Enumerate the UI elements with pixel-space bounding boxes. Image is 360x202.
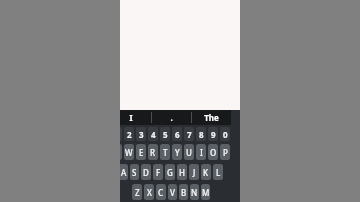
staticText: S <box>132 167 137 178</box>
staticText: P <box>223 147 228 158</box>
staticText: F <box>156 167 161 178</box>
button[interactable]: W <box>124 144 134 160</box>
staticText: 3 <box>139 129 144 140</box>
staticText: O <box>210 147 217 158</box>
button[interactable]: O <box>208 144 218 160</box>
staticText: C <box>158 187 164 198</box>
staticText: W <box>125 147 133 158</box>
staticText: 6 <box>175 129 180 140</box>
staticText: . <box>170 112 173 123</box>
button[interactable]: R <box>148 144 158 160</box>
button[interactable]: Q <box>120 144 122 160</box>
button[interactable]: V <box>168 184 177 200</box>
staticText: L <box>216 167 221 178</box>
button[interactable]: U <box>184 144 194 160</box>
staticText: 4 <box>151 129 156 140</box>
staticText: V <box>170 187 175 198</box>
button[interactable]: A <box>120 164 128 180</box>
staticText: D <box>143 167 149 178</box>
button[interactable]: Y <box>172 144 182 160</box>
staticText: R <box>150 147 156 158</box>
button[interactable]: S <box>130 164 139 180</box>
button[interactable]: 6 <box>172 127 182 141</box>
button[interactable]: 1 <box>120 127 122 141</box>
staticText: U <box>186 147 192 158</box>
button[interactable]: K <box>201 164 211 180</box>
button[interactable]: F <box>153 164 163 180</box>
button[interactable]: 9 <box>208 127 218 141</box>
button[interactable]: G <box>165 164 175 180</box>
button[interactable]: D <box>141 164 151 180</box>
staticText: Y <box>175 147 180 158</box>
staticText: K <box>203 167 209 178</box>
staticText: X <box>147 187 152 198</box>
button[interactable]: Z <box>132 184 142 200</box>
staticText: 9 <box>211 129 216 140</box>
staticText: I <box>200 147 203 158</box>
staticText: 2 <box>127 129 132 140</box>
button[interactable]: M <box>201 184 210 200</box>
button[interactable]: 4 <box>148 127 158 141</box>
button[interactable]: T <box>160 144 170 160</box>
button[interactable]: 3 <box>136 127 146 141</box>
staticText: M <box>202 187 210 198</box>
staticText: The <box>204 112 219 123</box>
button[interactable]: 7 <box>184 127 194 141</box>
button[interactable]: X <box>144 184 154 200</box>
button[interactable]: 8 <box>196 127 206 141</box>
button[interactable]: 0 <box>220 127 230 141</box>
staticText: N <box>191 187 198 198</box>
staticText: 8 <box>199 129 204 140</box>
staticText: 0 <box>223 129 228 140</box>
button[interactable]: L <box>213 164 223 180</box>
button[interactable]: C <box>156 184 166 200</box>
staticText: 5 <box>163 129 168 140</box>
button[interactable]: The <box>192 110 231 125</box>
button[interactable]: H <box>177 164 187 180</box>
staticText: H <box>179 167 185 178</box>
staticText: J <box>193 167 196 178</box>
button[interactable]: E <box>136 144 146 160</box>
staticText: E <box>139 147 144 158</box>
staticText: T <box>163 147 168 158</box>
button[interactable]: B <box>179 184 188 200</box>
button[interactable]: J <box>189 164 199 180</box>
staticText: Z <box>135 187 140 198</box>
button[interactable]: 5 <box>160 127 170 141</box>
staticText: G <box>167 167 173 178</box>
button[interactable]: I <box>120 110 151 125</box>
button[interactable]: 2 <box>124 127 134 141</box>
staticText: B <box>181 187 187 198</box>
staticText: A <box>121 167 127 178</box>
staticText: 7 <box>187 129 192 140</box>
button[interactable]: . <box>152 110 191 125</box>
button[interactable]: I <box>196 144 206 160</box>
button[interactable]: N <box>190 184 199 200</box>
staticText: I <box>129 112 133 123</box>
button[interactable]: P <box>220 144 230 160</box>
